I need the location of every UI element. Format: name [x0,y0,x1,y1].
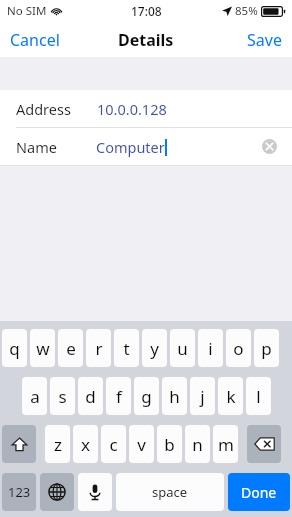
staticText: v [137,433,146,456]
staticText: u [177,337,188,360]
button[interactable]: f [106,377,131,415]
staticText: l [256,385,261,408]
button[interactable]: Backspace [247,425,281,463]
button[interactable]: c [101,425,126,463]
staticText: 85% [235,3,258,19]
button[interactable]: j [190,377,215,415]
staticText: j [200,385,205,408]
button[interactable]: s [50,377,75,415]
button[interactable]: w [30,329,55,367]
button[interactable]: Done [228,473,290,511]
button[interactable]: Shift [2,425,36,463]
staticText: k [226,385,236,408]
staticText: Address [16,99,71,119]
button[interactable]: o [226,329,251,367]
staticText: space [152,483,188,501]
button[interactable]: d [78,377,103,415]
staticText: h [169,385,180,408]
staticText: t [123,337,130,360]
staticText: Computer [96,137,165,157]
staticText: b [164,433,175,456]
staticText: m [218,433,234,456]
button[interactable]: l [246,377,271,415]
staticText: 17:08 [131,3,162,19]
staticText: i [208,337,213,360]
button[interactable]: p [254,329,279,367]
staticText: o [233,337,244,360]
button[interactable]: b [157,425,182,463]
button[interactable]: x [73,425,98,463]
staticText: q [9,337,20,360]
staticText: Cancel [10,29,60,51]
button[interactable]: h [162,377,187,415]
button[interactable]: space [116,473,224,511]
staticText: g [141,385,152,408]
button[interactable]: u [170,329,195,367]
staticText: f [116,385,122,408]
staticText: a [30,385,40,408]
button[interactable]: Change keyboard language [40,473,74,511]
button[interactable]: Clear text [262,139,277,154]
staticText: r [95,337,103,360]
staticText: Name [16,137,57,157]
button[interactable]: t [114,329,139,367]
button[interactable]: i [198,329,223,367]
staticText: n [192,433,203,456]
button[interactable]: 123 [2,473,36,511]
staticText: Save [247,29,282,51]
staticText: y [150,337,159,360]
button[interactable]: Cancel [0,22,70,57]
staticText: d [85,385,96,408]
button[interactable]: y [142,329,167,367]
button[interactable]: k [218,377,243,415]
staticText: z [54,433,62,456]
staticText: 10.0.0.128 [97,99,167,119]
staticText: No SIM [7,3,47,19]
button[interactable]: Dictate [78,473,112,511]
button[interactable]: e [58,329,83,367]
button[interactable]: Address [0,90,292,127]
staticText: Details [118,29,174,51]
button[interactable]: a [22,377,47,415]
staticText: 123 [8,483,31,501]
button[interactable]: g [134,377,159,415]
staticText: c [109,433,118,456]
staticText: e [66,337,76,360]
staticText: p [261,337,272,360]
staticText: Done [241,483,277,502]
button[interactable]: Name [0,128,292,165]
staticText: x [81,433,90,456]
button[interactable]: v [129,425,154,463]
button[interactable]: Save [237,22,292,57]
button[interactable]: r [86,329,111,367]
button[interactable]: m [213,425,238,463]
button[interactable]: n [185,425,210,463]
staticText: s [58,385,67,408]
button[interactable]: z [45,425,70,463]
button[interactable]: q [2,329,27,367]
staticText: w [36,337,50,360]
